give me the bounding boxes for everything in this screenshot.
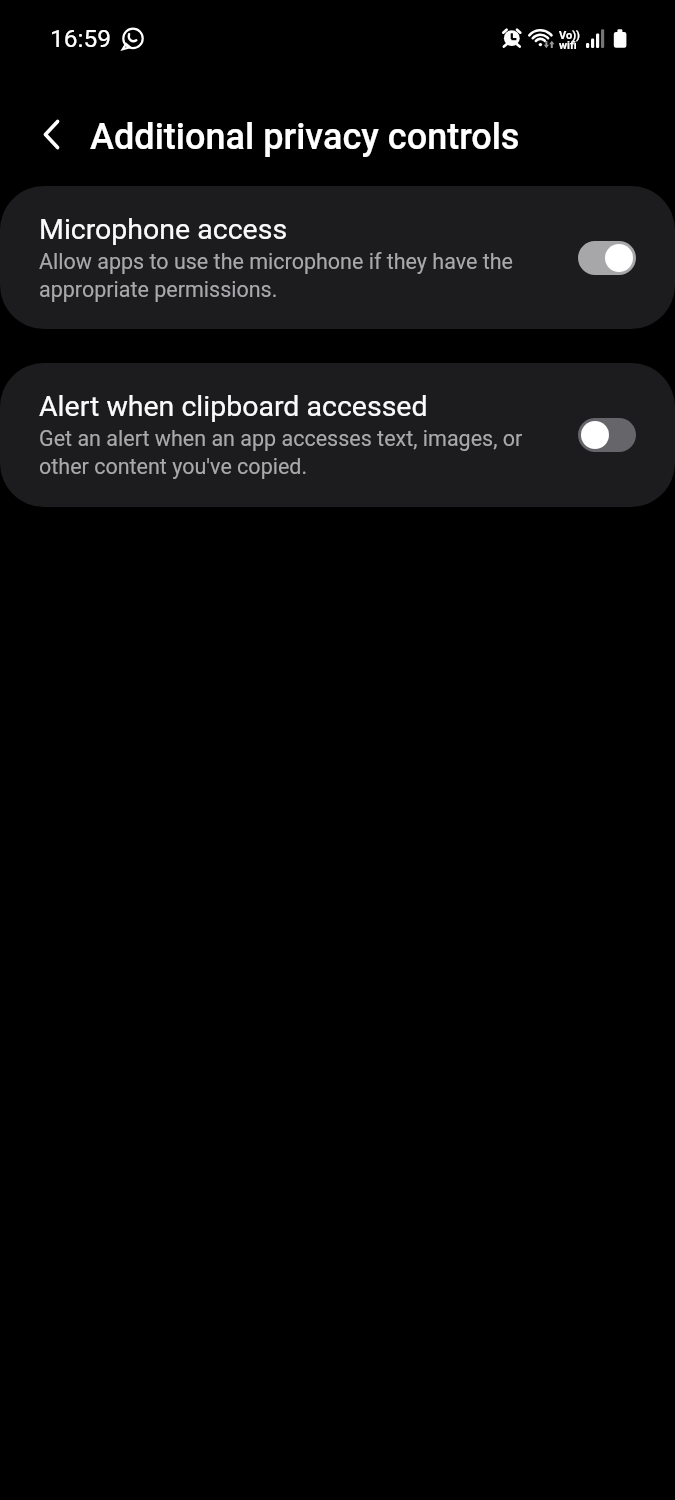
button[interactable]: Microphone access — [0, 186, 675, 329]
staticText: Alert when clipboard accessed — [39, 390, 428, 423]
button[interactable]: Alert when clipboard accessed — [0, 363, 675, 507]
staticText: wifi — [559, 39, 577, 52]
staticText: Microphone access — [39, 213, 288, 246]
button[interactable]: Back — [22, 105, 80, 163]
staticText: Get an alert when an app accesses text, … — [39, 426, 539, 480]
button[interactable]: Turn off — [578, 241, 636, 275]
staticText: Vo)) — [559, 29, 580, 42]
staticText: Additional privacy controls — [90, 116, 520, 158]
staticText: 16:59 — [50, 24, 112, 53]
button[interactable]: Turn on — [578, 418, 636, 452]
staticText: Allow apps to use the microphone if they… — [39, 249, 539, 303]
